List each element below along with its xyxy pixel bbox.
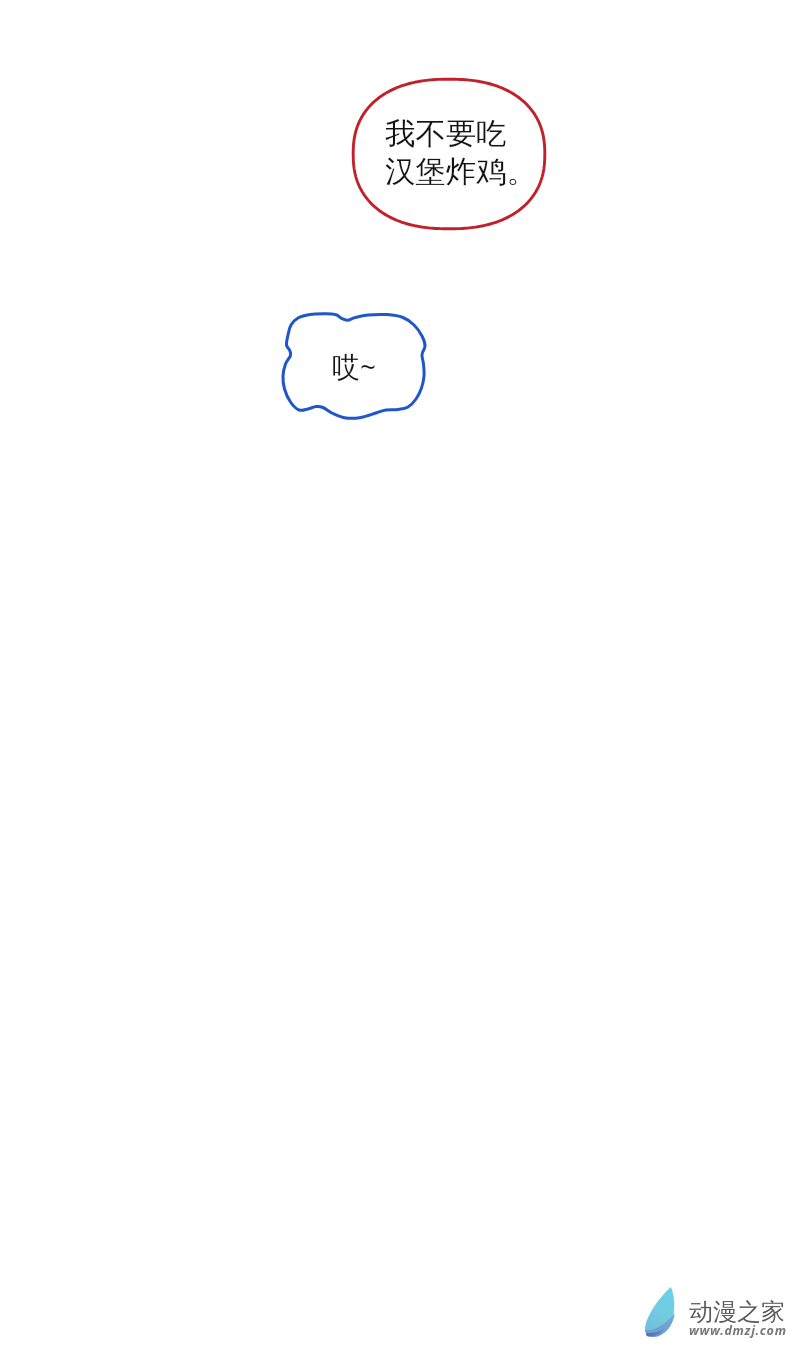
staticText: 动漫之家	[689, 1297, 785, 1327]
button[interactable]: 我不要吃	[350, 76, 548, 232]
staticText: 哎~	[332, 347, 377, 385]
staticText: www.dmzj.com	[689, 1322, 787, 1339]
button[interactable]: 哎~	[276, 306, 432, 426]
staticText: 汉堡炸鸡。	[385, 153, 537, 191]
staticText: 我不要吃	[385, 115, 507, 153]
button[interactable]: dmzj logo	[640, 1280, 792, 1342]
